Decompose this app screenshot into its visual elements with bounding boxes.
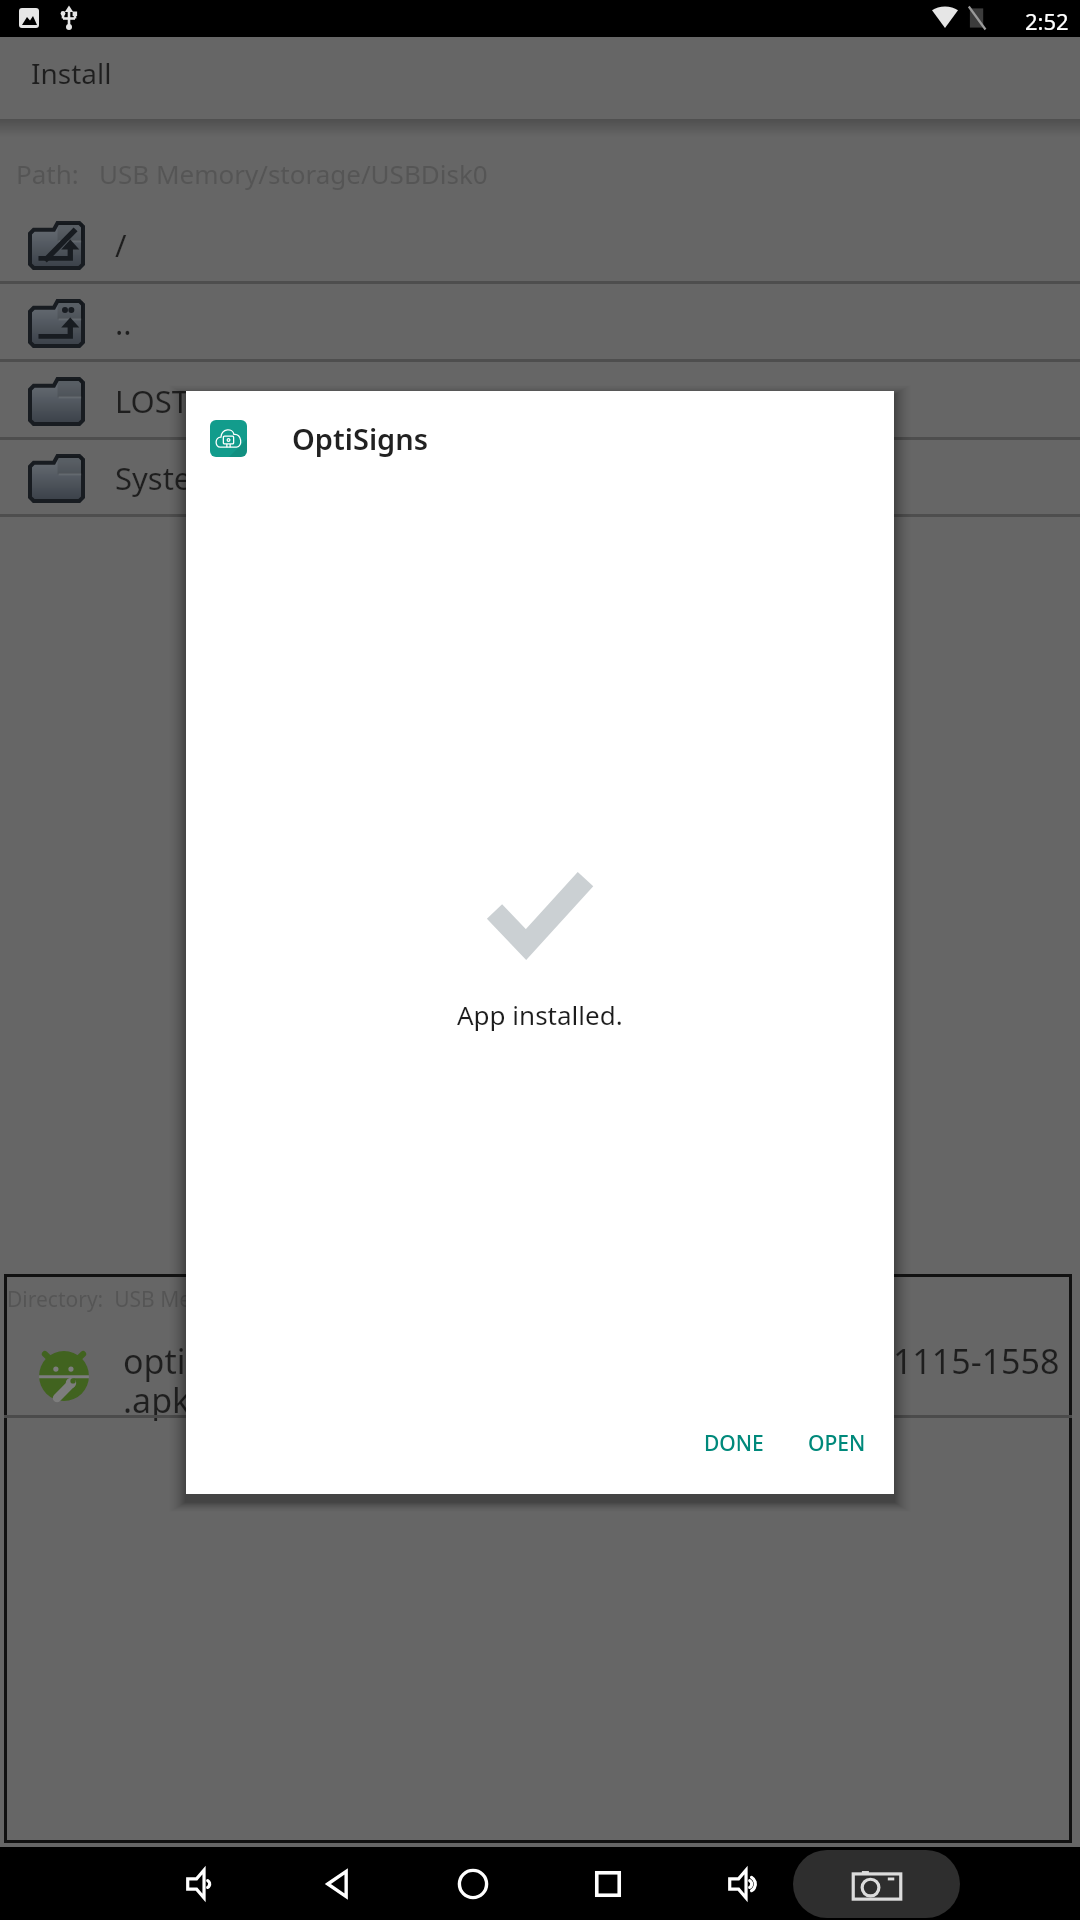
staticText: App installed. xyxy=(457,997,623,1032)
staticText: System Volume Information xyxy=(115,457,523,499)
button[interactable]: .. xyxy=(0,284,1080,362)
staticText: optisigns_release_arm64_v1.2.34_build371… xyxy=(123,1338,1060,1423)
button[interactable]: System Volume Information xyxy=(0,439,1080,517)
staticText: OptiSigns xyxy=(292,419,429,458)
staticText: LOST.DIR xyxy=(115,380,248,422)
button[interactable]: Volume up xyxy=(707,1847,780,1920)
button[interactable]: LOST.DIR xyxy=(0,362,1080,440)
staticText: DONE xyxy=(704,1429,764,1458)
button[interactable]: optisigns_release_arm64_v1.2.34_build371… xyxy=(4,1326,1072,1415)
staticText: .. xyxy=(115,302,132,344)
staticText: / xyxy=(115,224,127,266)
button[interactable]: OPEN xyxy=(786,1415,888,1472)
staticText: Directory: USB Memory/storage/USBDisk0 xyxy=(7,1285,429,1314)
button[interactable]: Home xyxy=(436,1847,509,1920)
button[interactable]: Recents xyxy=(571,1847,644,1920)
button[interactable]: / xyxy=(0,206,1080,284)
staticText: OPEN xyxy=(808,1429,866,1458)
button[interactable]: DONE xyxy=(682,1415,786,1472)
staticText: Path: USB Memory/storage/USBDisk0 xyxy=(16,156,488,191)
button[interactable]: Screenshot xyxy=(793,1850,960,1918)
staticText: 2:52 xyxy=(1025,6,1069,36)
button[interactable]: Back xyxy=(301,1847,374,1920)
staticText: Install xyxy=(31,54,112,92)
button[interactable]: Volume down xyxy=(165,1847,238,1920)
